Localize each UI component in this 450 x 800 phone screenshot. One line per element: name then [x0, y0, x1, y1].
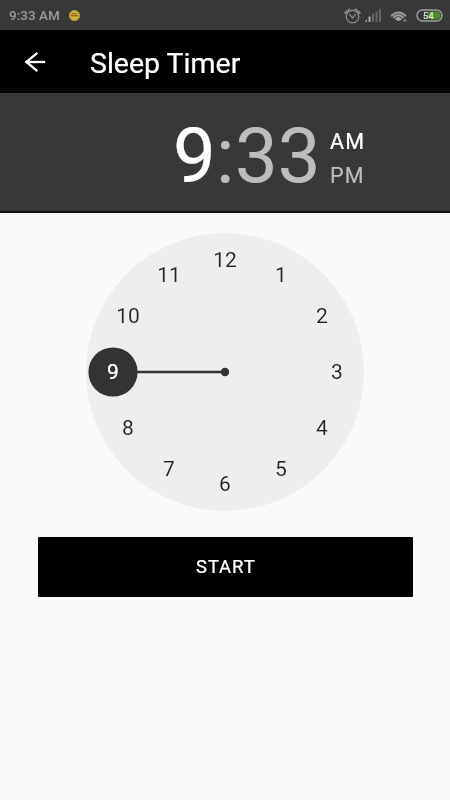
staticText: 12: [213, 248, 237, 273]
staticText: 1: [275, 263, 287, 288]
button[interactable]: AM: [330, 129, 366, 154]
button[interactable]: Back: [11, 38, 59, 86]
button[interactable]: 4: [305, 411, 339, 445]
button[interactable]: PM: [330, 163, 365, 188]
staticText: 5: [275, 457, 287, 482]
staticText: 54: [423, 10, 434, 21]
staticText: START: [196, 556, 256, 578]
button[interactable]: 6: [208, 467, 242, 501]
button[interactable]: 3: [320, 355, 354, 389]
staticText: 8: [122, 416, 134, 441]
staticText: 7: [163, 457, 175, 482]
button[interactable]: 2: [305, 299, 339, 333]
button[interactable]: 9: [96, 355, 130, 389]
staticText: 9:33 AM: [9, 7, 60, 23]
button[interactable]: 11: [152, 258, 186, 292]
staticText: 2: [316, 304, 328, 329]
button[interactable]: START: [38, 537, 413, 597]
button[interactable]: 5: [264, 452, 298, 486]
button[interactable]: 9: [173, 111, 216, 200]
staticText: 3: [331, 360, 343, 385]
button[interactable]: 1: [264, 258, 298, 292]
staticText: 11: [157, 263, 181, 288]
button[interactable]: 10: [111, 299, 145, 333]
button[interactable]: 33: [235, 111, 321, 200]
staticText: 6: [219, 472, 231, 497]
button[interactable]: 12: [208, 243, 242, 277]
staticText: 9: [107, 360, 119, 385]
button[interactable]: 8: [111, 411, 145, 445]
staticText: :: [216, 111, 235, 200]
staticText: 10: [116, 304, 140, 329]
button[interactable]: 7: [152, 452, 186, 486]
staticText: Sleep Timer: [90, 47, 241, 80]
staticText: 4: [316, 416, 328, 441]
